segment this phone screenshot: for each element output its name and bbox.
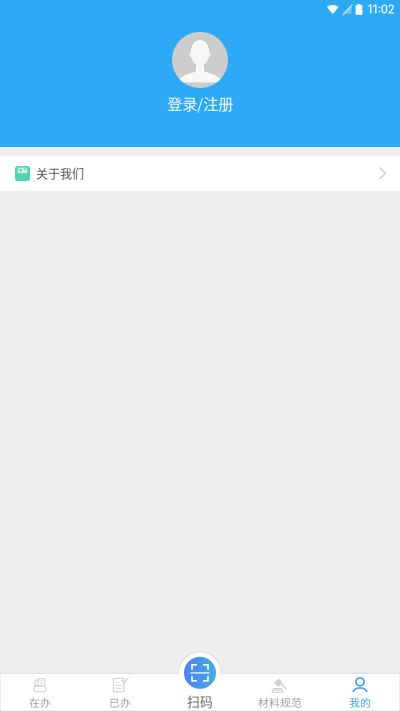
staticText: 在办 xyxy=(29,694,51,710)
staticText: 登录/注册 xyxy=(167,92,233,114)
button[interactable]: 关于我们 xyxy=(0,156,400,191)
staticText: 关于我们 xyxy=(36,165,84,182)
button[interactable]: 已办 xyxy=(80,676,160,711)
staticText: 11:02 xyxy=(367,3,394,16)
button[interactable]: 登录/注册 xyxy=(0,32,400,114)
button[interactable]: 材料规范 xyxy=(240,676,320,711)
button[interactable]: 我的 xyxy=(320,676,400,711)
button[interactable]: 扫码 xyxy=(160,651,240,711)
staticText: 扫码 xyxy=(187,692,213,710)
button[interactable]: 在办 xyxy=(0,676,80,711)
staticText: 材料规范 xyxy=(258,694,302,710)
staticText: 我的 xyxy=(349,694,371,710)
staticText: 已办 xyxy=(109,694,131,710)
